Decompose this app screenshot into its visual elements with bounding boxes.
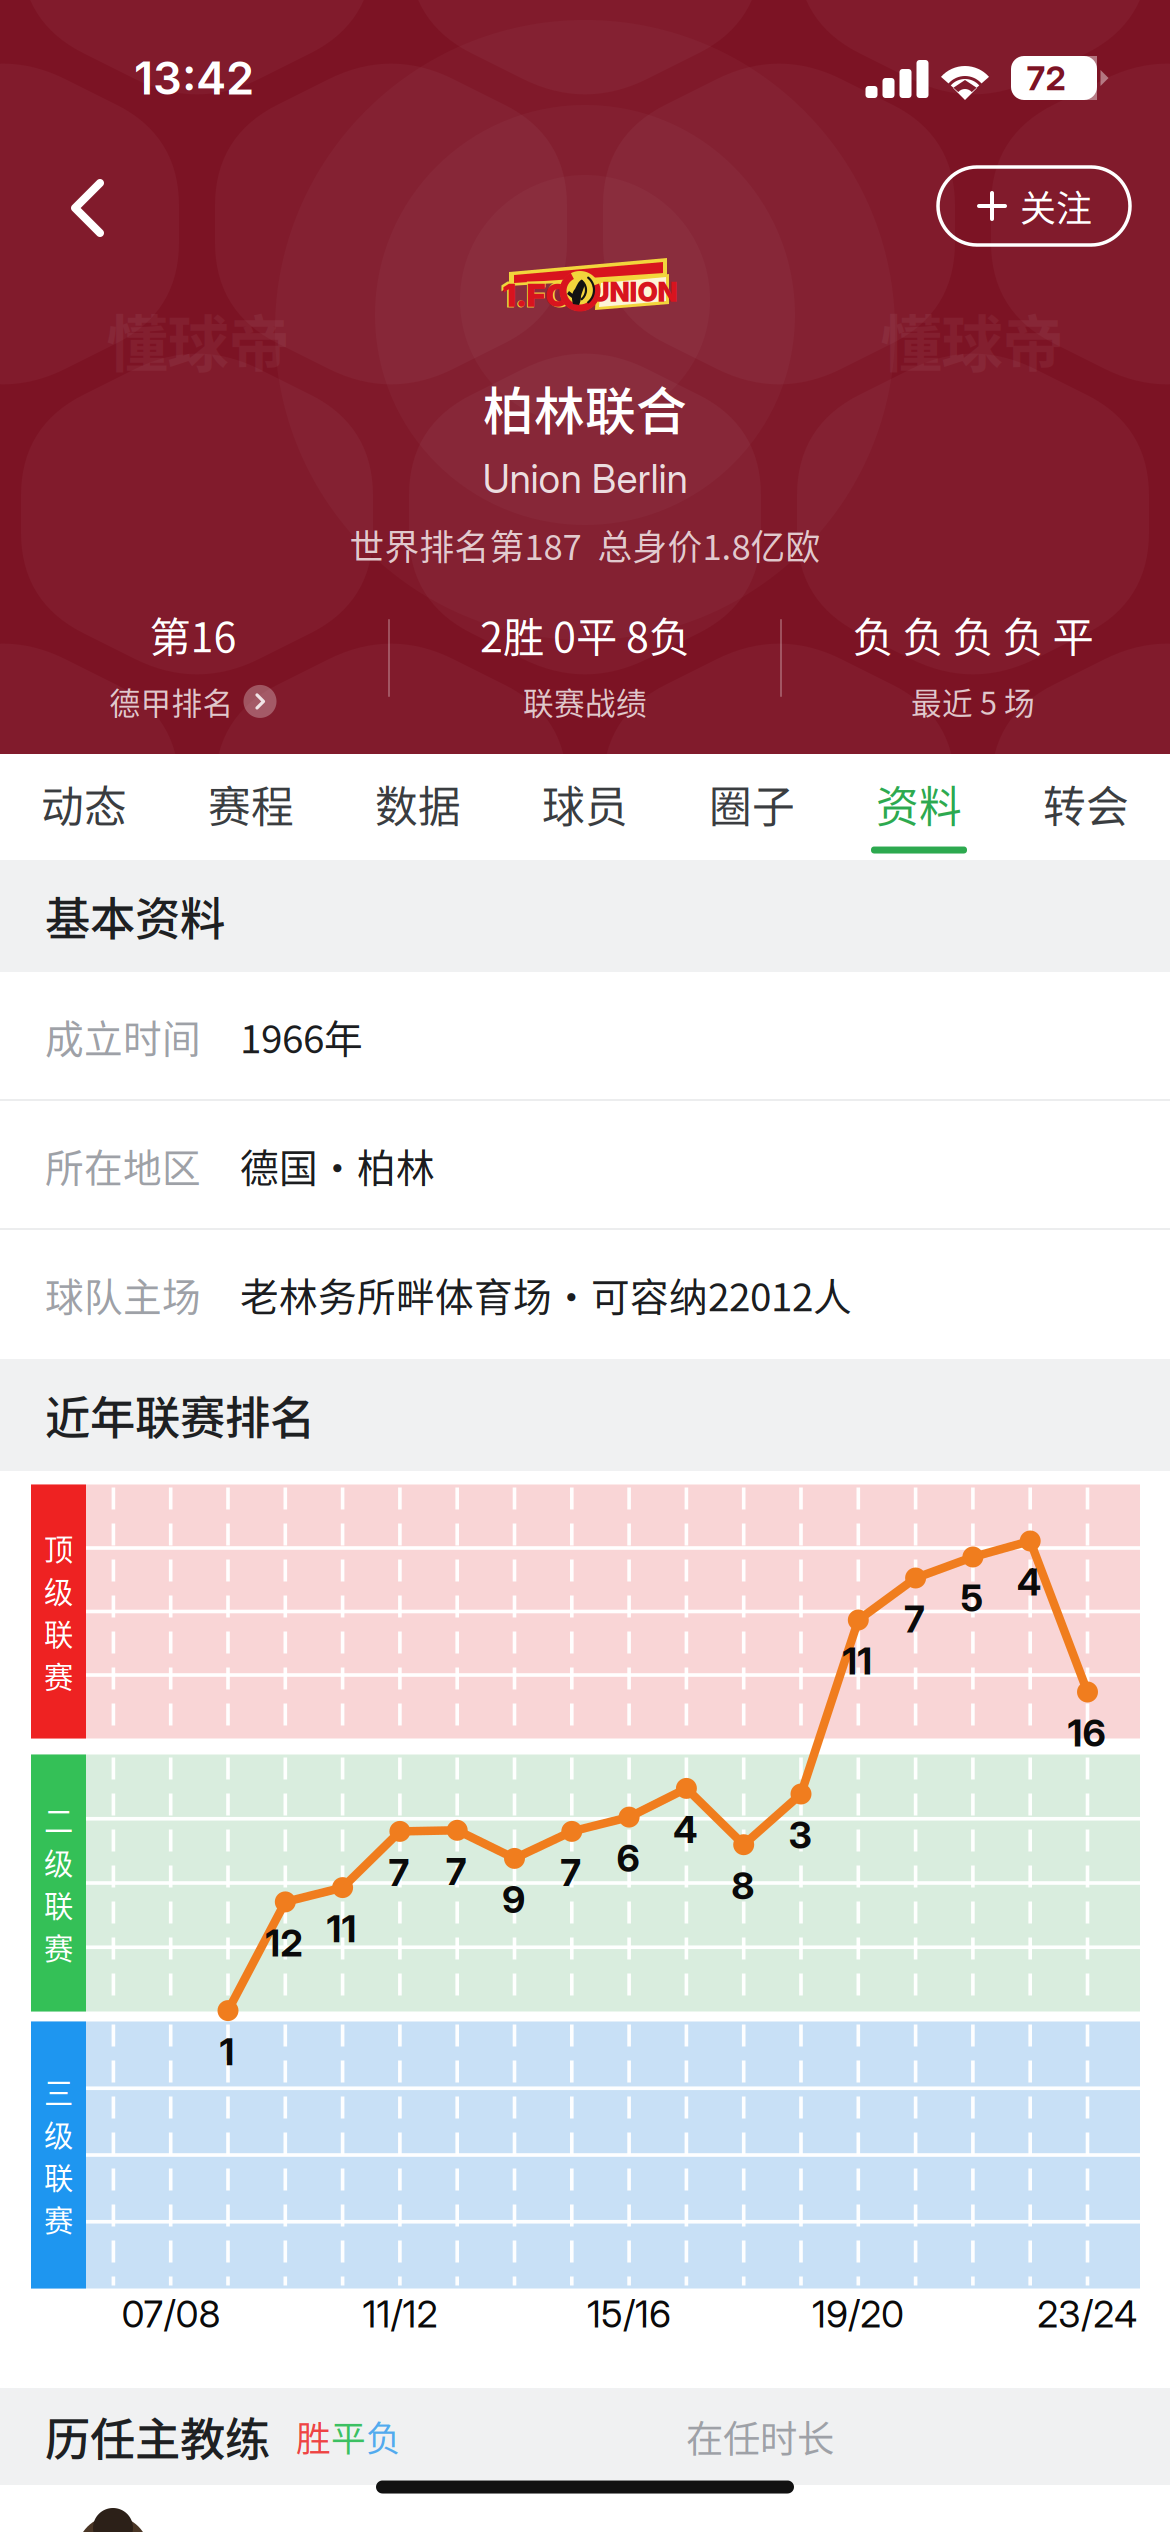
staticText: 23/24 [1037, 2291, 1137, 2337]
staticText: 13:42 [134, 51, 254, 105]
staticText: 关注 [1020, 180, 1092, 232]
staticText: Union Berlin [482, 456, 687, 502]
staticText: 赛 [44, 2197, 73, 2240]
button[interactable]: 数据 [334, 754, 501, 860]
staticText: 4 [673, 1807, 698, 1852]
staticText: 圈子 [709, 773, 795, 835]
button[interactable]: 球员 [501, 754, 668, 860]
button[interactable]: 关注 [938, 167, 1130, 245]
staticText: 11/12 [362, 2291, 437, 2337]
staticText: 成立时间 [45, 1008, 201, 1064]
staticText: 72 [1026, 58, 1065, 98]
staticText: 顶 [44, 1527, 73, 1569]
staticText: 6 [617, 1835, 640, 1881]
button[interactable]: 资料 [835, 754, 1002, 860]
staticText: 德国·柏林 [240, 1137, 435, 1193]
staticText: 在任时长 [686, 2409, 834, 2464]
button[interactable]: Back [28, 148, 148, 268]
button[interactable]: 圈子 [668, 754, 835, 860]
staticText: 7 [446, 1849, 467, 1894]
staticText: 16 [1067, 1710, 1105, 1756]
button[interactable]: 转会 [1002, 754, 1169, 860]
staticText: 柏林联合 [483, 371, 687, 445]
staticText: 二 [44, 1798, 73, 1841]
staticText: 1966年 [240, 1008, 363, 1064]
staticText: 转会 [1043, 773, 1129, 835]
staticText: 最近 5 场 [911, 679, 1035, 724]
staticText: 资料 [876, 773, 962, 835]
staticText: 平 [331, 2411, 366, 2462]
staticText: 1.FC [500, 274, 571, 316]
staticText: 所在地区 [45, 1137, 201, 1193]
staticText: 12 [265, 1920, 303, 1965]
staticText: 19/20 [812, 2291, 904, 2337]
staticText: 4 [1017, 1559, 1042, 1605]
staticText: 9 [502, 1877, 525, 1922]
staticText: 老林务所畔体育场·可容纳22012人 [240, 1266, 852, 1322]
staticText: 2胜 0平 8负 [480, 604, 690, 664]
button[interactable]: 赛程 [167, 754, 334, 860]
staticText: 德甲排名 [109, 679, 233, 724]
staticText: 15/16 [587, 2291, 671, 2337]
button[interactable]: 动态 [0, 754, 167, 860]
staticText: 近年联赛排名 [45, 1382, 315, 1448]
staticText: 级 [44, 1569, 73, 1611]
staticText: 联 [44, 2155, 73, 2197]
staticText: 懂球帝 [106, 296, 289, 384]
staticText: UNION [590, 276, 677, 308]
staticText: 联赛战绩 [523, 679, 647, 724]
staticText: 赛 [44, 1925, 73, 1968]
staticText: 11 [842, 1638, 872, 1684]
staticText: 联 [44, 1883, 73, 1925]
staticText: 7 [388, 1850, 409, 1895]
staticText: 1 [219, 2029, 234, 2074]
staticText: 胜 [296, 2411, 331, 2462]
staticText: 世界排名第187 总身价1.8亿欧 [349, 520, 820, 570]
staticText: 三 [44, 2070, 73, 2113]
staticText: 动态 [41, 773, 127, 835]
staticText: 联 [44, 1611, 73, 1654]
staticText: 懂球帝 [880, 296, 1063, 384]
staticText: 级 [44, 2112, 73, 2155]
staticText: 第16 [149, 604, 236, 664]
staticText: 负 [366, 2411, 401, 2462]
staticText: 球员 [542, 773, 628, 835]
staticText: 赛程 [208, 773, 294, 835]
staticText: 11 [327, 1906, 357, 1951]
staticText: 7 [904, 1596, 925, 1642]
staticText: 7 [560, 1850, 581, 1895]
staticText: 8 [731, 1863, 754, 1908]
staticText: 负 负 负 负 平 [852, 604, 1093, 664]
staticText: 3 [788, 1812, 811, 1858]
staticText: 赛 [44, 1654, 73, 1696]
staticText: 球队主场 [45, 1266, 201, 1322]
staticText: 1.FC [502, 276, 569, 314]
staticText: 级 [44, 1840, 73, 1883]
staticText: 基本资料 [45, 883, 225, 949]
staticText: 历任主教练 [45, 2404, 270, 2469]
staticText: 07/08 [121, 2291, 220, 2337]
staticText: 数据 [375, 773, 461, 835]
staticText: 5 [960, 1575, 983, 1621]
